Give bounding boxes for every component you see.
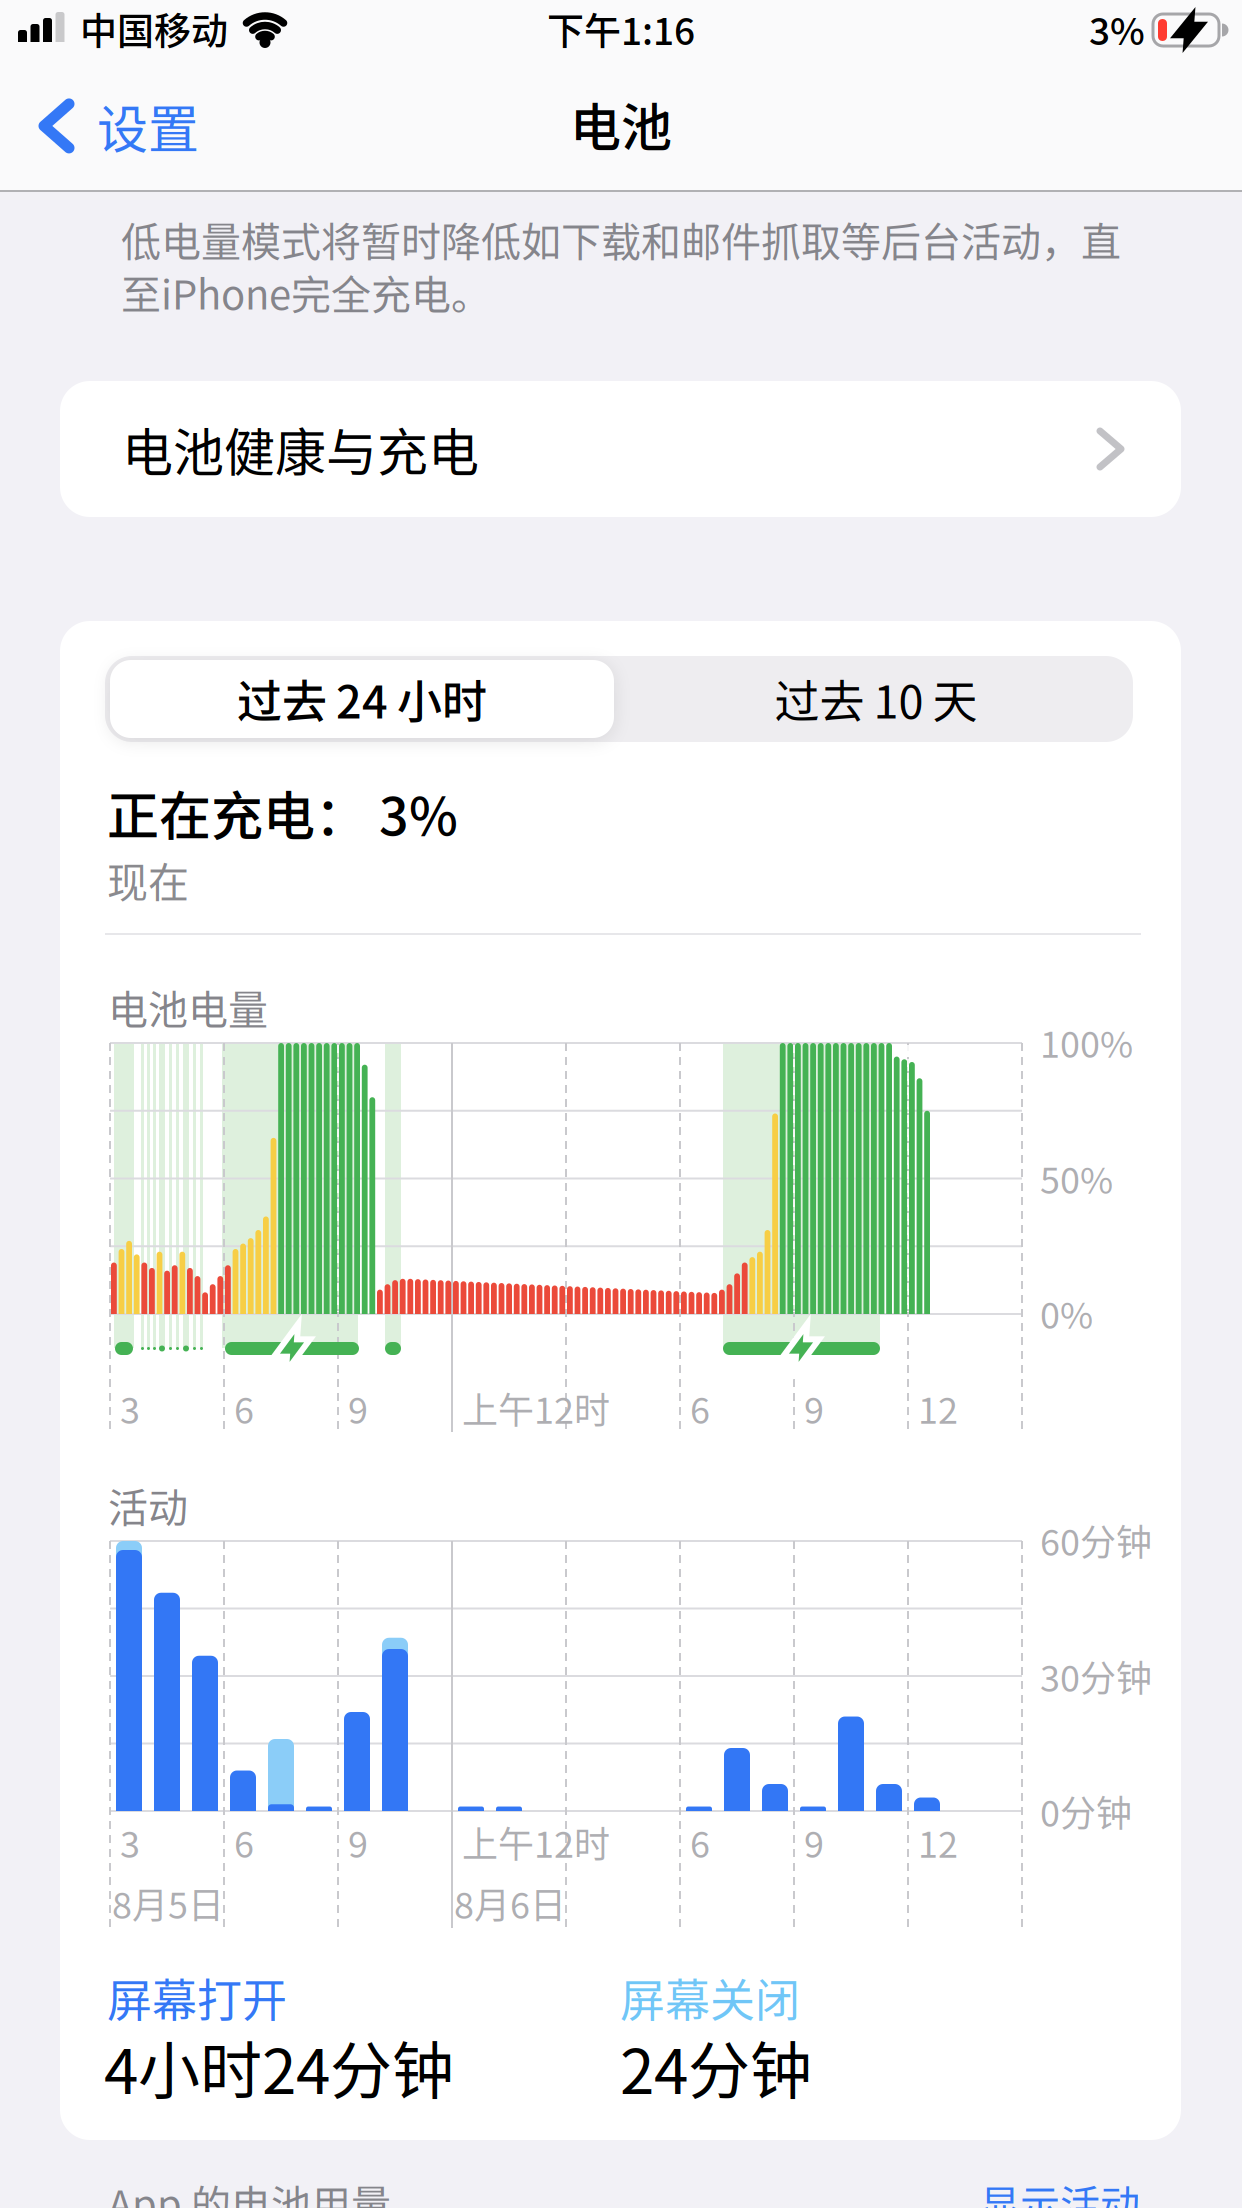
- staticText: 3: [120, 1816, 140, 1868]
- staticText: App 的电池用量: [108, 2173, 391, 2208]
- staticText: 24分钟: [620, 2022, 812, 2112]
- staticText: 低电量模式将暂时降低如下载和邮件抓取等后台活动，直: [121, 210, 1121, 268]
- staticText: 显示活动: [980, 2173, 1140, 2208]
- staticText: 12: [918, 1816, 958, 1868]
- staticText: 电池: [570, 87, 672, 161]
- staticText: 3%: [1089, 2, 1145, 56]
- staticText: 9: [348, 1816, 368, 1868]
- staticText: 100%: [1040, 1016, 1133, 1068]
- staticText: 6: [234, 1816, 254, 1868]
- button[interactable]: 过去 10 天: [619, 656, 1133, 742]
- staticText: 设置: [97, 89, 199, 163]
- staticText: 下午1:16: [547, 2, 695, 56]
- button[interactable]: 过去 24 小时: [105, 656, 619, 742]
- staticText: 0%: [1040, 1287, 1093, 1339]
- staticText: 60分钟: [1040, 1514, 1152, 1566]
- staticText: 中国移动: [80, 2, 228, 56]
- staticText: 屏幕关闭: [620, 1965, 800, 2030]
- staticText: 过去 24 小时: [237, 666, 487, 732]
- staticText: 屏幕打开: [107, 1965, 287, 2030]
- staticText: 3: [120, 1382, 140, 1434]
- staticText: 上午12时: [462, 1816, 610, 1868]
- staticText: 活动: [108, 1476, 188, 1534]
- staticText: 30分钟: [1040, 1650, 1152, 1702]
- staticText: 8月5日: [112, 1877, 224, 1929]
- staticText: 9: [804, 1816, 824, 1868]
- staticText: 9: [804, 1382, 824, 1434]
- staticText: 50%: [1040, 1152, 1113, 1204]
- staticText: 上午12时: [462, 1382, 610, 1434]
- staticText: 0分钟: [1040, 1785, 1132, 1837]
- staticText: 8月6日: [454, 1877, 566, 1929]
- staticText: 电池电量: [108, 978, 268, 1036]
- staticText: 至iPhone完全充电。: [121, 263, 491, 321]
- staticText: 过去 10 天: [774, 666, 977, 732]
- staticText: 6: [690, 1816, 710, 1868]
- button[interactable]: 显示活动: [980, 2173, 1140, 2208]
- button[interactable]: 设置: [38, 89, 199, 163]
- staticText: 6: [234, 1382, 254, 1434]
- staticText: 正在充电： 3%: [107, 775, 458, 850]
- staticText: 现在: [107, 850, 189, 909]
- staticText: 12: [918, 1382, 958, 1434]
- staticText: 9: [348, 1382, 368, 1434]
- staticText: 电池健康与充电: [122, 412, 479, 486]
- staticText: 6: [690, 1382, 710, 1434]
- button[interactable]: 电池健康与充电: [60, 381, 1181, 517]
- staticText: 4小时24分钟: [104, 2022, 454, 2112]
